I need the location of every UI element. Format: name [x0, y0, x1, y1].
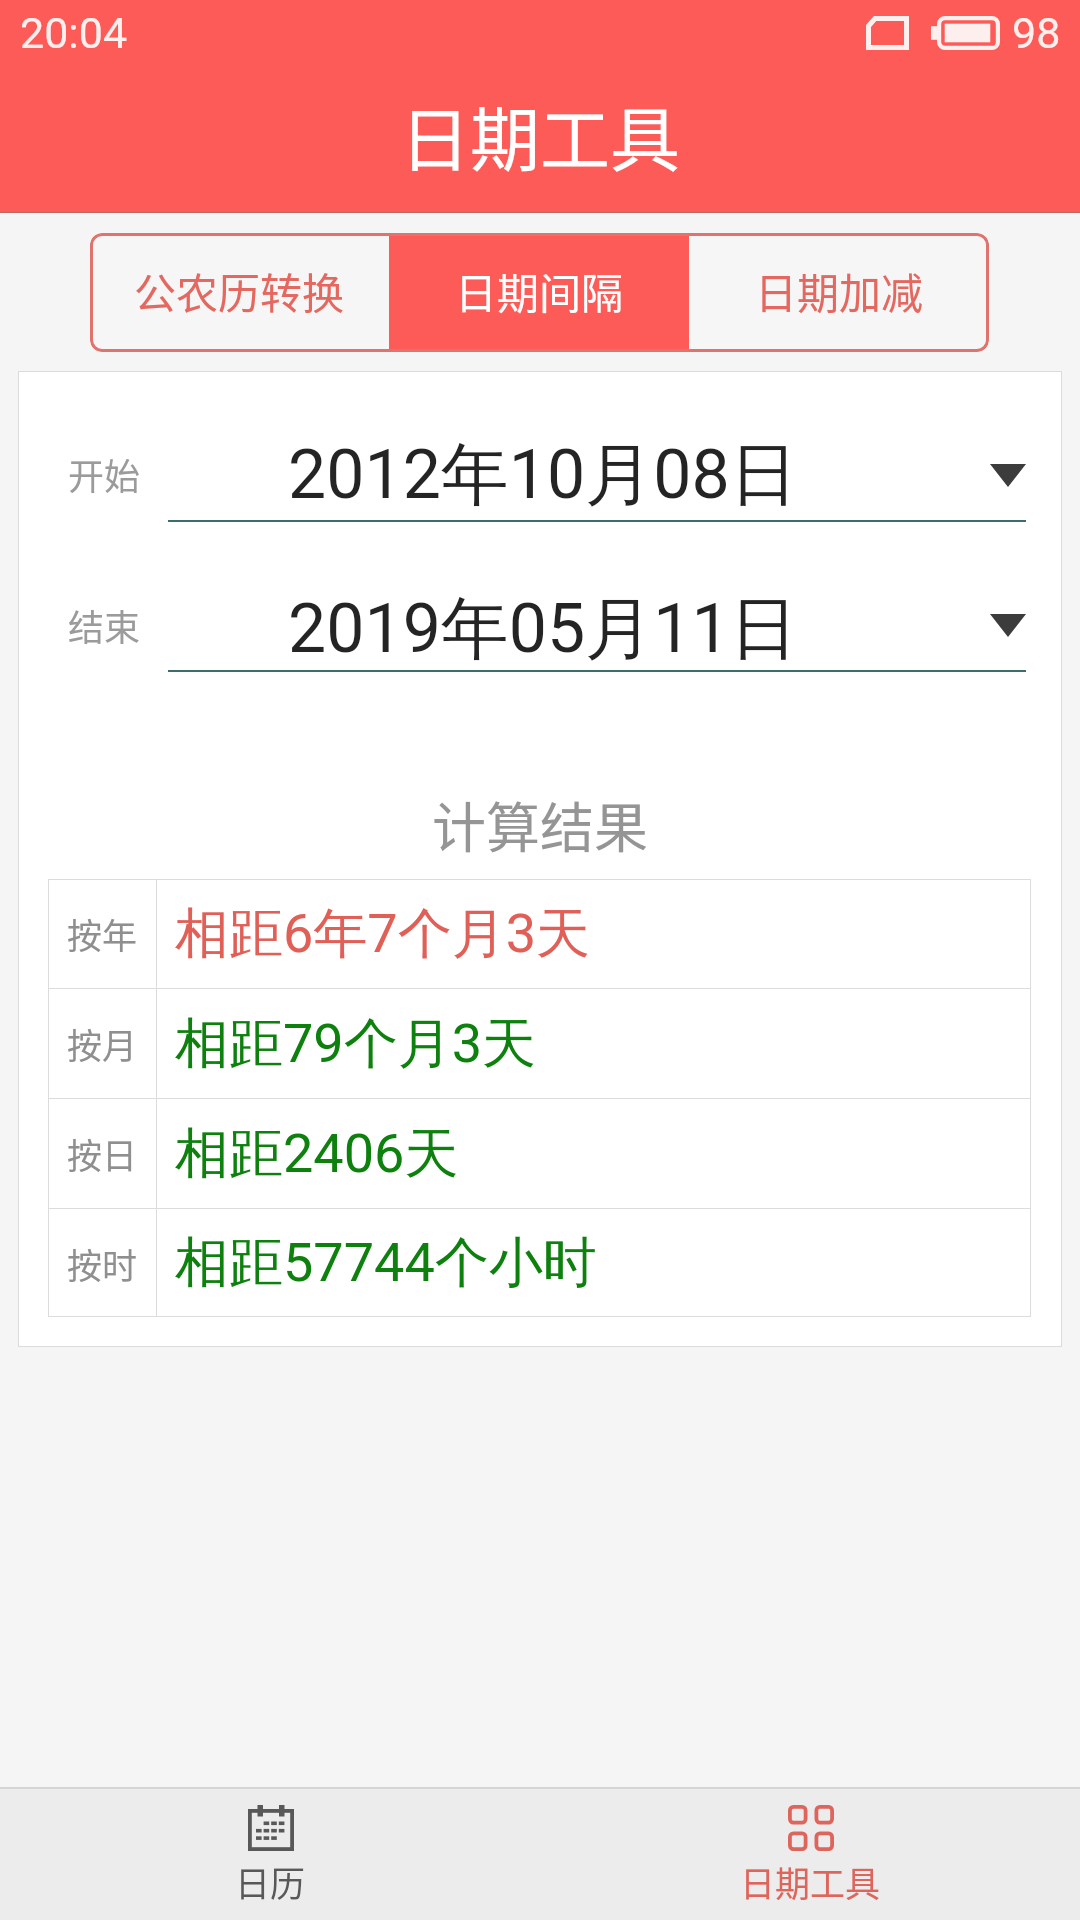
- staticText: 日期工具: [400, 85, 680, 186]
- staticText: 2019年05月11日: [288, 587, 798, 673]
- button[interactable]: 2012年10月08日: [168, 417, 1026, 522]
- staticText: 2012年10月08日: [288, 433, 798, 519]
- staticText: 计算结果: [432, 785, 648, 863]
- staticText: 相距57744个小时: [175, 1229, 597, 1297]
- button[interactable]: 日历: [0, 1789, 540, 1920]
- staticText: 日期间隔: [455, 260, 624, 321]
- staticText: 相距79个月3天: [175, 1010, 537, 1078]
- other: SIM card: [866, 16, 909, 50]
- staticText: 20:04: [20, 8, 128, 58]
- other: Battery: [931, 16, 1000, 50]
- button[interactable]: 日期工具: [540, 1789, 1080, 1920]
- staticText: 日历: [235, 1856, 306, 1907]
- staticText: 按时: [67, 1238, 138, 1289]
- staticText: 日期工具: [740, 1856, 881, 1907]
- staticText: 相距6年7个月3天: [175, 900, 591, 968]
- staticText: 98: [1012, 8, 1061, 58]
- button[interactable]: 日期加减: [689, 233, 989, 352]
- staticText: 公农历转换: [134, 260, 345, 321]
- staticText: 按日: [67, 1128, 138, 1179]
- staticText: 按月: [67, 1018, 138, 1069]
- staticText: 相距2406天: [175, 1120, 459, 1188]
- button[interactable]: 公农历转换: [90, 233, 389, 352]
- button[interactable]: 2019年05月11日: [168, 571, 1026, 672]
- staticText: 开始: [68, 448, 141, 500]
- button[interactable]: 日期间隔: [389, 233, 689, 352]
- staticText: 日期加减: [755, 260, 924, 321]
- staticText: 结束: [68, 599, 141, 651]
- staticText: 按年: [67, 908, 138, 959]
